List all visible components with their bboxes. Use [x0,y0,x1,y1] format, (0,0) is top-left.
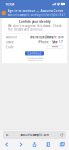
staticText: accounts.example.com/signin/verify?id=84… [7,13,65,17]
staticText: Account [6,35,17,39]
button[interactable]: Back [0,139,14,150]
staticText: alex.morgan@example.com [30,35,63,39]
staticText: Continue [27,52,41,55]
button[interactable]: ᴀA [3,131,66,139]
staticText: •••••• [52,45,58,49]
button[interactable]: Bookmarks [41,139,55,150]
staticText: ᴀA [5,133,8,137]
staticText: Code [6,45,14,49]
button[interactable]: Share [28,139,41,150]
staticText: 10:04 [5,1,14,7]
staticText: iPhone · Safari 17 [38,40,63,44]
button[interactable]: Continue [25,51,44,55]
staticText: We don't recognise this device. Check th… [8,24,61,31]
staticText: Sign in to continue — Accounts Centre [7,9,63,13]
button[interactable]: Forward [14,139,28,150]
staticText: Device [6,40,14,44]
button[interactable]: Tabs [55,139,69,150]
staticText: Confirm your identity [19,20,50,23]
staticText: Try another way · Get help [26,57,43,59]
staticText: accounts.example.com [20,133,48,137]
staticText: English (United Kingdom) [27,59,42,61]
